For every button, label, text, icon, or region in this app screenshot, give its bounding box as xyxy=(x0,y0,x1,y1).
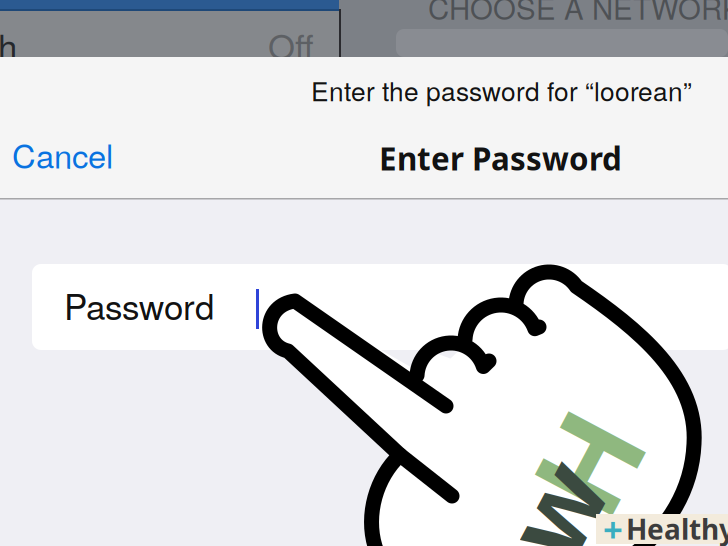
button[interactable]: Password xyxy=(32,264,728,350)
button[interactable]: Cancel xyxy=(12,131,113,178)
staticText: Off xyxy=(268,20,314,70)
staticText: Enter Password xyxy=(379,137,622,180)
staticText: + xyxy=(603,505,623,546)
staticText: Enter the password for “loorean” xyxy=(311,71,692,109)
staticText: H xyxy=(540,378,634,545)
staticText: Cancel xyxy=(12,131,113,178)
staticText: w xyxy=(510,436,601,546)
staticText: Password xyxy=(64,280,214,330)
staticText: h xyxy=(0,20,17,70)
staticText: Healthy xyxy=(626,510,728,546)
staticText: CHOOSE A NETWORK... xyxy=(428,0,728,28)
